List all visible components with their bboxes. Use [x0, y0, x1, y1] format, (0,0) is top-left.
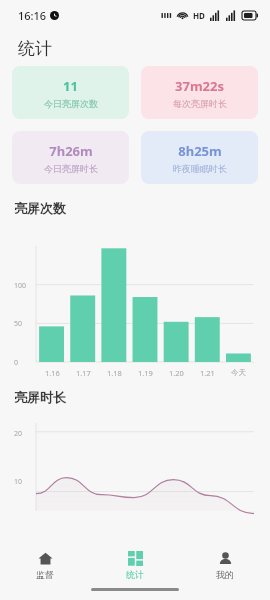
staticText: 亮屏次数: [14, 200, 66, 216]
staticText: 统计: [18, 38, 52, 59]
staticText: 1.18: [107, 368, 122, 378]
staticText: 监督: [36, 569, 54, 580]
staticText: 我的: [216, 569, 234, 580]
staticText: 亮屏时长: [14, 389, 66, 405]
staticText: 统计: [126, 569, 144, 580]
staticText: 1.16: [45, 368, 60, 378]
staticText: 8h25m: [178, 142, 222, 160]
staticText: 0: [14, 358, 19, 368]
button[interactable]: 37m22s: [141, 66, 258, 119]
staticText: 今日亮屏次数: [44, 98, 98, 109]
staticText: 昨夜睡眠时长: [173, 163, 227, 174]
staticText: 今日亮屏时长: [44, 163, 98, 174]
staticText: 每次亮屏时长: [173, 98, 227, 109]
button[interactable]: 我的: [180, 542, 270, 588]
staticText: 37m22s: [175, 77, 224, 95]
staticText: 10: [14, 477, 23, 487]
button[interactable]: 8h25m: [141, 131, 258, 184]
staticText: 今天: [231, 368, 246, 377]
staticText: 11: [63, 77, 78, 95]
staticText: 20: [14, 429, 23, 439]
button[interactable]: 监督: [0, 542, 90, 588]
other: 监督: [38, 551, 53, 566]
staticText: 50: [14, 319, 23, 329]
staticText: 1.17: [76, 368, 91, 378]
other: 统计: [128, 551, 143, 566]
other: 我的: [218, 551, 233, 566]
staticText: 16:16: [18, 8, 47, 23]
staticText: 7h26m: [49, 142, 93, 160]
staticText: 1.20: [169, 368, 184, 378]
staticText: 1.21: [200, 368, 215, 378]
button[interactable]: 统计: [90, 542, 180, 588]
staticText: HD: [193, 10, 205, 21]
button[interactable]: 7h26m: [12, 131, 129, 184]
staticText: 100: [14, 281, 27, 291]
button[interactable]: 11: [12, 66, 129, 119]
staticText: 1.19: [138, 368, 153, 378]
